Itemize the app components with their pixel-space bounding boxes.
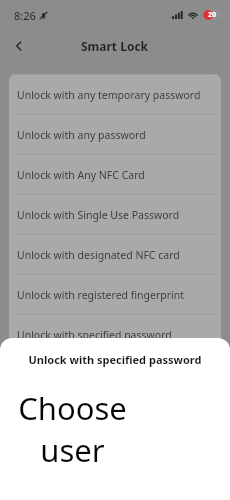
- staticText: Unlock with designated NFC card: [17, 248, 180, 262]
- button[interactable]: Unlock with specified password: [9, 315, 221, 355]
- button[interactable]: Unlock with dynamic password: [9, 355, 221, 395]
- button[interactable]: Unlock with Single Use Password: [9, 195, 221, 235]
- button[interactable]: Unlock with registered fingerprint: [9, 275, 221, 315]
- staticText: Smart Lock: [81, 38, 149, 54]
- button[interactable]: Back: [4, 31, 34, 61]
- button[interactable]: Unlock with Any NFC Card: [9, 155, 221, 195]
- button[interactable]: Unlock with any temporary password: [9, 75, 221, 115]
- staticText: Unlock with Any NFC Card: [17, 168, 145, 182]
- staticText: 20: [208, 10, 217, 20]
- staticText: Choose user: [0, 387, 145, 471]
- button[interactable]: Unlock with designated NFC card: [9, 235, 221, 275]
- button[interactable]: Unlock with any password: [9, 115, 221, 155]
- staticText: Unlock with any password: [17, 128, 146, 142]
- staticText: Unlock with specified password: [17, 328, 172, 342]
- staticText: Unlock with registered fingerprint: [17, 288, 185, 302]
- staticText: Unlock with specified password: [12, 352, 218, 367]
- staticText: Unlock with Single Use Password: [17, 208, 180, 222]
- staticText: 8:26: [14, 8, 36, 23]
- staticText: Unlock with any temporary password: [17, 88, 201, 102]
